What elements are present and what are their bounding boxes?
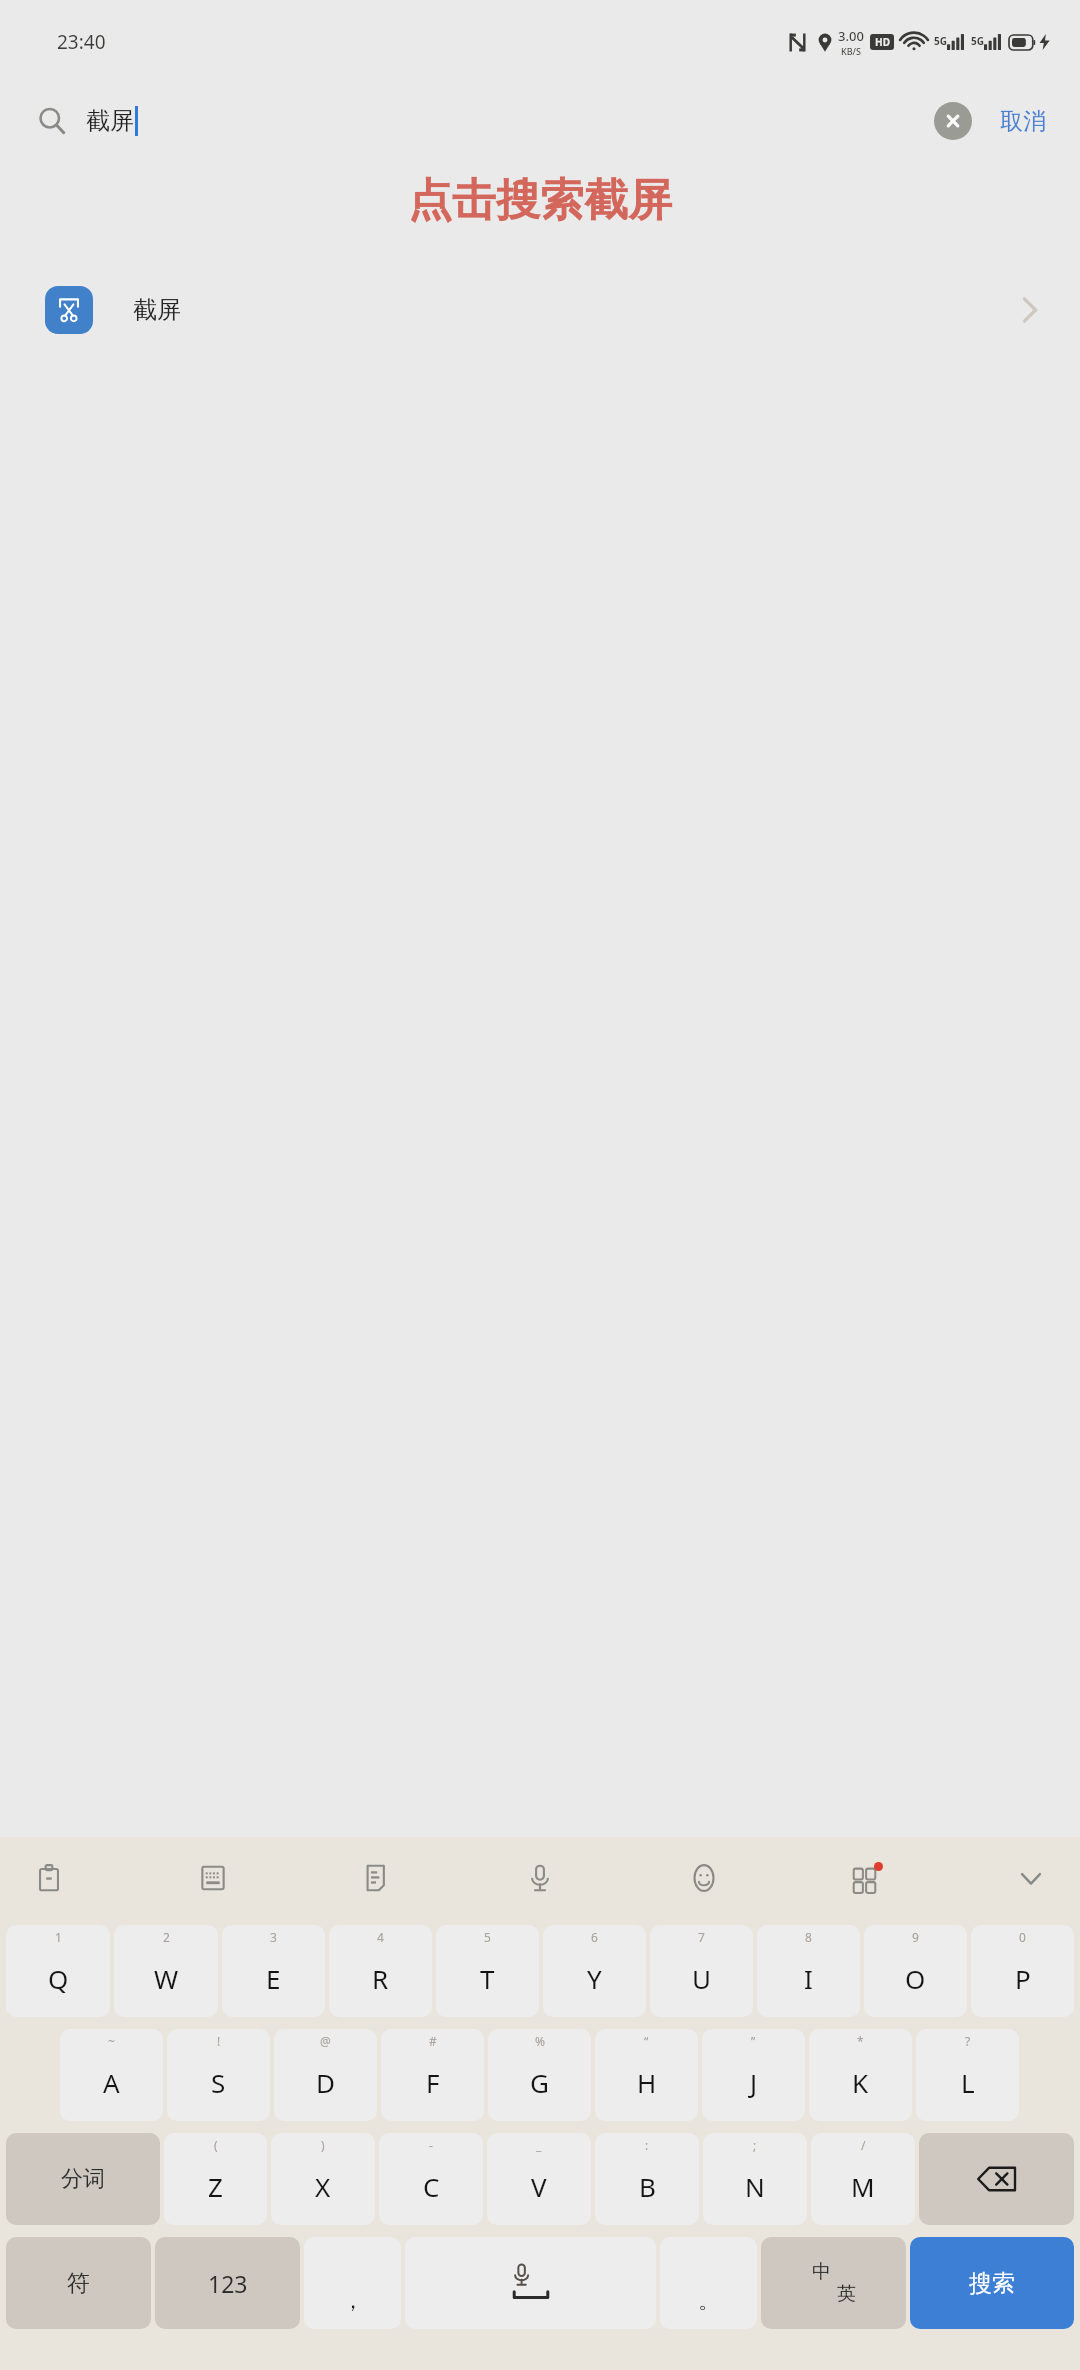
button[interactable]: 4: [329, 1925, 432, 2017]
staticText: /: [861, 2137, 866, 2153]
button[interactable]: “: [595, 2029, 698, 2121]
button[interactable]: ”: [702, 2029, 805, 2121]
staticText: %: [535, 2033, 545, 2049]
button[interactable]: 123: [155, 2237, 300, 2329]
staticText: X: [315, 2169, 331, 2204]
button[interactable]: !: [167, 2029, 270, 2121]
staticText: S: [211, 2065, 226, 2100]
button[interactable]: ;: [703, 2133, 807, 2225]
staticText: KB/S: [841, 45, 861, 57]
staticText: 截屏: [133, 295, 181, 325]
staticText: W: [154, 1961, 179, 1996]
staticText: 取消: [1000, 107, 1046, 136]
staticText: 5G: [971, 34, 984, 48]
staticText: 4: [377, 1929, 384, 1945]
staticText: -: [429, 2137, 433, 2153]
button[interactable]: 9: [864, 1925, 967, 2017]
button[interactable]: ~: [60, 2029, 163, 2121]
staticText: HD: [875, 35, 890, 49]
staticText: 。: [698, 2287, 720, 2315]
button[interactable]: More tools: [844, 1855, 890, 1901]
button[interactable]: 5: [436, 1925, 539, 2017]
button[interactable]: ): [271, 2133, 375, 2225]
staticText: 5: [484, 1929, 491, 1945]
staticText: 7: [698, 1929, 705, 1945]
button[interactable]: Voice input: [517, 1855, 563, 1901]
staticText: @: [320, 2033, 331, 2049]
button[interactable]: /: [811, 2133, 915, 2225]
staticText: V: [531, 2169, 547, 2204]
staticText: 点击搜索截屏: [408, 173, 672, 228]
staticText: E: [266, 1961, 281, 1996]
staticText: A: [103, 2065, 120, 2100]
button[interactable]: 0: [971, 1925, 1074, 2017]
button[interactable]: 2: [114, 1925, 218, 2017]
staticText: 3.00: [838, 27, 864, 45]
staticText: H: [637, 2065, 657, 2100]
button[interactable]: Backspace: [919, 2133, 1074, 2225]
staticText: 123: [208, 2268, 248, 2299]
button[interactable]: 分词: [6, 2133, 160, 2225]
staticText: N: [745, 2169, 765, 2204]
button[interactable]: 7: [650, 1925, 753, 2017]
button[interactable]: Clipboard: [26, 1855, 72, 1901]
staticText: 分词: [61, 2165, 105, 2193]
staticText: 2: [163, 1929, 170, 1945]
staticText: B: [639, 2169, 656, 2204]
staticText: ?: [965, 2033, 971, 2049]
staticText: M: [851, 2169, 875, 2204]
staticText: C: [423, 2169, 440, 2204]
staticText: K: [852, 2065, 869, 2100]
staticText: :: [645, 2137, 649, 2153]
staticText: #: [429, 2033, 437, 2049]
button[interactable]: 。: [660, 2237, 757, 2329]
button[interactable]: 8: [757, 1925, 860, 2017]
button[interactable]: 1: [6, 1925, 110, 2017]
button[interactable]: -: [379, 2133, 483, 2225]
staticText: T: [480, 1961, 495, 1996]
staticText: 9: [912, 1929, 919, 1945]
button[interactable]: ?: [916, 2029, 1019, 2121]
staticText: 1: [55, 1929, 62, 1945]
staticText: ): [321, 2137, 325, 2153]
staticText: ”: [751, 2033, 756, 2049]
staticText: ~: [108, 2033, 115, 2049]
button[interactable]: 取消: [996, 101, 1050, 142]
button[interactable]: 6: [543, 1925, 646, 2017]
staticText: *: [857, 2033, 864, 2049]
staticText: J: [750, 2065, 758, 2100]
button[interactable]: Clear text: [934, 102, 972, 140]
staticText: Q: [48, 1961, 69, 1996]
staticText: ;: [753, 2137, 757, 2153]
staticText: “: [644, 2033, 649, 2049]
button[interactable]: 3: [222, 1925, 325, 2017]
staticText: P: [1015, 1961, 1031, 1996]
staticText: 23:40: [57, 29, 106, 55]
staticText: 6: [591, 1929, 598, 1945]
button[interactable]: Notes: [353, 1855, 399, 1901]
button[interactable]: *: [809, 2029, 912, 2121]
button[interactable]: 截屏: [0, 265, 1080, 355]
button[interactable]: 搜索: [910, 2237, 1074, 2329]
staticText: 符: [67, 2269, 90, 2298]
button[interactable]: _: [487, 2133, 591, 2225]
button[interactable]: :: [595, 2133, 699, 2225]
button[interactable]: Hide keyboard: [1008, 1855, 1054, 1901]
button[interactable]: 符: [6, 2237, 151, 2329]
staticText: 8: [805, 1929, 812, 1945]
button[interactable]: ，: [304, 2237, 401, 2329]
staticText: 截屏: [86, 106, 134, 136]
staticText: R: [372, 1961, 389, 1996]
staticText: ，: [342, 2287, 364, 2315]
button[interactable]: Emoji: [681, 1855, 727, 1901]
staticText: Y: [587, 1961, 602, 1996]
button[interactable]: Chinese English toggle: [761, 2237, 906, 2329]
button[interactable]: %: [488, 2029, 591, 2121]
button[interactable]: Space: [405, 2237, 656, 2329]
staticText: F: [426, 2065, 440, 2100]
staticText: 搜索: [969, 2269, 1015, 2298]
button[interactable]: @: [274, 2029, 377, 2121]
button[interactable]: Keyboard layout: [190, 1855, 236, 1901]
button[interactable]: #: [381, 2029, 484, 2121]
button[interactable]: (: [164, 2133, 267, 2225]
